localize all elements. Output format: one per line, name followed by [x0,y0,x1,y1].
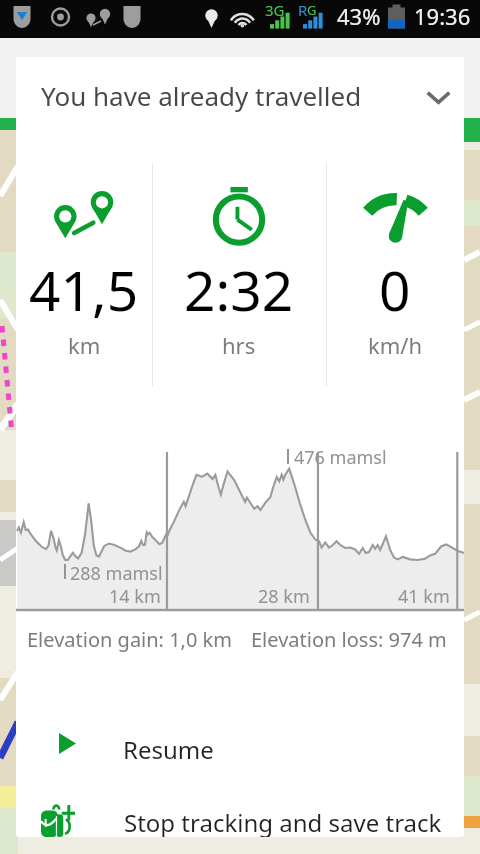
staticText: Elevation loss: 974 m [251,626,447,653]
staticText: Resume [123,733,214,766]
staticText: Stop tracking and save track [124,806,442,837]
staticText: Elevation gain: 1,0 km [27,626,232,653]
staticText: R [298,0,308,20]
staticText: km/h [368,330,423,360]
button[interactable]: Resume [16,715,464,775]
staticText: km [68,330,101,360]
staticText: 19:36 [414,1,471,31]
button[interactable]: You have already travelled [16,57,464,137]
staticText: 43% [337,1,381,31]
staticText: 288 mamsl [70,561,163,586]
button[interactable]: Collapse [414,73,462,121]
staticText: You have already travelled [41,78,362,113]
button[interactable]: 41,5 [16,157,152,447]
staticText: 41 km [398,584,450,609]
button[interactable]: 2:32 [152,157,326,447]
staticText: G [307,1,317,19]
staticText: 0 [379,252,411,327]
button[interactable]: Stop tracking and save track [16,787,464,837]
staticText: 28 km [258,584,310,609]
button[interactable]: 0 [326,157,464,447]
staticText: 476 mamsl [294,445,387,470]
staticText: 14 km [109,584,161,609]
staticText: hrs [222,330,256,360]
staticText: 3G [265,0,285,20]
staticText: 41,5 [29,252,139,327]
staticText: 2:32 [184,252,294,327]
